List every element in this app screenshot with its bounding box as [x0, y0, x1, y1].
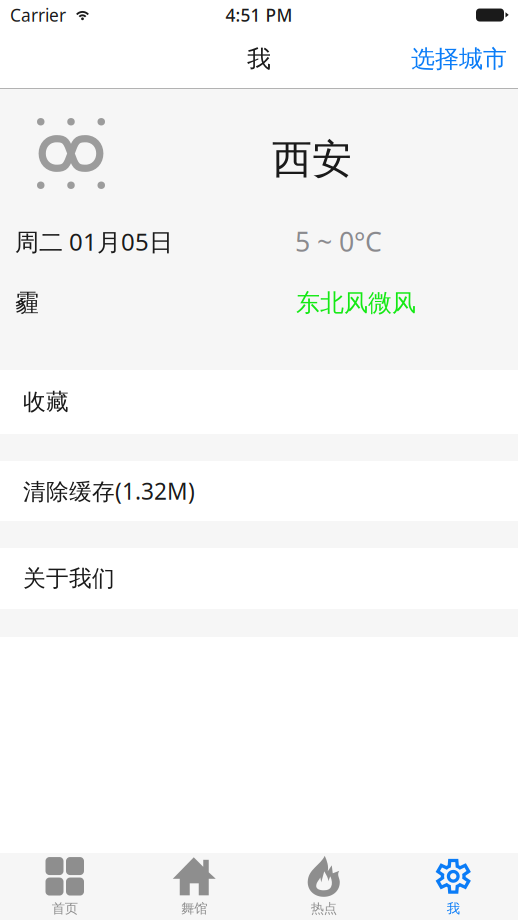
staticText: 热点	[311, 900, 337, 917]
staticText: 首页	[52, 900, 78, 917]
button[interactable]: 我	[388, 853, 518, 920]
button[interactable]: 舞馆	[129, 853, 259, 920]
button[interactable]: 清除缓存(1.32M)	[0, 461, 518, 521]
staticText: 收藏	[23, 388, 69, 416]
staticText: 4:51 PM	[225, 3, 292, 26]
staticText: 舞馆	[181, 900, 207, 917]
button[interactable]: 收藏	[0, 370, 518, 434]
staticText: 周二 01月05日	[15, 226, 173, 257]
staticText: Carrier	[10, 3, 66, 26]
button[interactable]: 热点	[259, 853, 388, 920]
staticText: 霾	[15, 288, 39, 318]
staticText: 选择城市	[411, 44, 507, 74]
staticText: 我	[447, 900, 460, 917]
staticText: 清除缓存(1.32M)	[23, 476, 195, 506]
staticText: 东北风微风	[296, 288, 416, 318]
button[interactable]: 首页	[0, 853, 129, 920]
button[interactable]: 关于我们	[0, 548, 518, 609]
staticText: 关于我们	[23, 565, 115, 592]
staticText: 5 ~ 0°C	[295, 224, 382, 259]
staticText: 我	[247, 44, 271, 74]
staticText: 西安	[272, 135, 352, 184]
button[interactable]: 选择城市	[400, 36, 518, 82]
